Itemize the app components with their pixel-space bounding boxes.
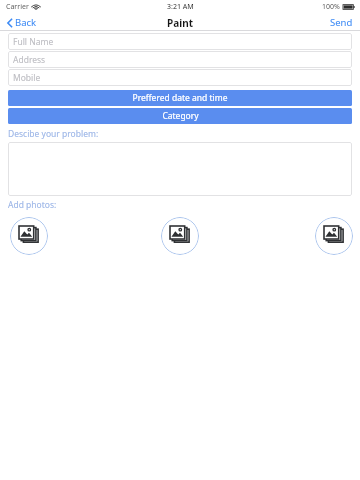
button[interactable]: Preffered date and time	[8, 90, 352, 106]
button[interactable]: Add photo	[10, 217, 48, 255]
button[interactable]: Send	[323, 14, 360, 31]
staticText: Back	[15, 16, 37, 29]
staticText: Category	[162, 110, 199, 122]
button[interactable]: Add photo	[161, 217, 199, 255]
staticText: Preffered date and time	[132, 92, 228, 104]
staticText: Descibe your problem:	[8, 128, 99, 140]
staticText: Paint	[167, 16, 194, 30]
staticText: 3:21 AM	[167, 2, 194, 12]
button[interactable]	[8, 142, 352, 196]
staticText: Send	[330, 16, 353, 29]
button[interactable]: Address	[8, 51, 352, 68]
button[interactable]: Add photo	[315, 217, 353, 255]
staticText: Carrier	[6, 2, 29, 12]
button[interactable]: Category	[8, 108, 352, 124]
button[interactable]: Back	[0, 14, 45, 31]
button[interactable]: Mobile	[8, 69, 352, 86]
staticText: Add photos:	[8, 199, 57, 211]
staticText: 100%	[322, 2, 340, 12]
staticText: Full Name	[13, 36, 54, 48]
staticText: Address	[13, 54, 46, 66]
button[interactable]: Full Name	[8, 33, 352, 50]
staticText: Mobile	[13, 72, 41, 84]
